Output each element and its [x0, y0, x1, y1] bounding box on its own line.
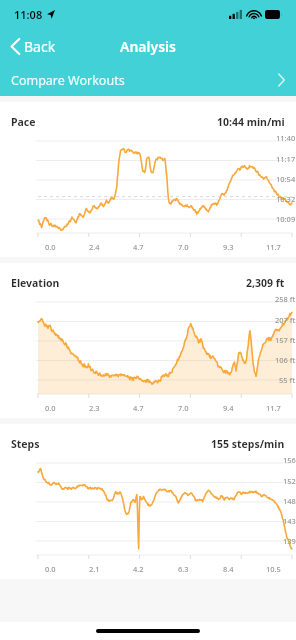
staticText: 10:54	[276, 174, 296, 184]
staticText: Pace	[11, 115, 36, 129]
staticText: 7.0	[178, 403, 189, 413]
staticText: 155 steps/min	[211, 437, 285, 451]
staticText: 11:40	[276, 133, 296, 143]
staticText: 11:08	[14, 7, 43, 22]
button[interactable]: Compare Workouts	[0, 64, 296, 96]
staticText: 8.4	[223, 564, 234, 574]
staticText: 55 ft	[279, 375, 296, 385]
staticText: Steps	[11, 437, 40, 451]
staticText: Analysis	[120, 37, 176, 56]
staticText: 11.7	[266, 403, 281, 413]
staticText: 2.1	[89, 564, 100, 574]
button[interactable]: Pace	[0, 102, 296, 257]
staticText: 10:09	[276, 214, 296, 224]
button[interactable]: Back	[7, 33, 60, 60]
staticText: Compare Workouts	[11, 72, 125, 89]
staticText: 11:17	[276, 154, 296, 164]
staticText: Elevation	[11, 276, 60, 290]
staticText: Back	[24, 37, 56, 56]
staticText: 207 ft	[275, 315, 296, 325]
staticText: 9.3	[223, 242, 234, 252]
button[interactable]: Steps	[0, 424, 296, 579]
staticText: 0.0	[45, 564, 56, 574]
staticText: 10:44 min/mi	[217, 115, 285, 129]
staticText: 2.4	[89, 242, 100, 252]
staticText: 152	[283, 476, 296, 486]
staticText: 106 ft	[275, 355, 296, 365]
staticText: 10:32	[276, 194, 296, 204]
staticText: 11.7	[266, 242, 281, 252]
staticText: 10.5	[266, 564, 281, 574]
staticText: 157 ft	[275, 335, 296, 345]
staticText: 2,309 ft	[246, 276, 285, 290]
staticText: 2.3	[89, 403, 100, 413]
button[interactable]: Elevation	[0, 263, 296, 418]
staticText: 6.3	[178, 564, 189, 574]
staticText: 148	[283, 496, 296, 506]
staticText: 4.7	[133, 403, 144, 413]
staticText: 4.2	[133, 564, 144, 574]
staticText: 4.7	[133, 242, 144, 252]
staticText: 7.0	[178, 242, 189, 252]
staticText: 139	[283, 536, 296, 546]
staticText: 9.4	[223, 403, 234, 413]
staticText: 156	[283, 455, 296, 465]
staticText: 0.0	[45, 242, 56, 252]
staticText: 0.0	[45, 403, 56, 413]
staticText: 143	[283, 516, 296, 526]
staticText: 258 ft	[275, 294, 296, 304]
